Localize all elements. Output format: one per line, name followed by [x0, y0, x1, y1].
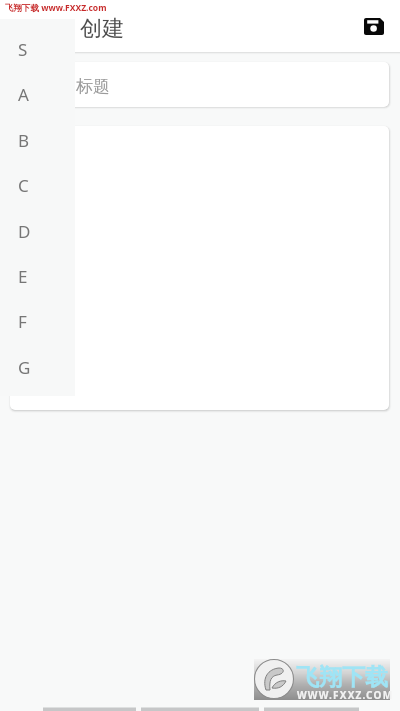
button[interactable]: S — [0, 27, 75, 72]
staticText: S — [18, 38, 28, 61]
staticText: A — [18, 83, 29, 106]
staticText: F — [18, 310, 27, 333]
button[interactable]: E — [0, 254, 75, 299]
button[interactable] — [10, 126, 389, 410]
staticText: WWW.FXXZ.COM — [297, 688, 394, 702]
staticText: D — [18, 220, 31, 243]
staticText: 创建 — [80, 15, 124, 43]
button[interactable]: C — [0, 163, 75, 208]
staticText: B — [18, 129, 30, 152]
staticText: 飞翔下载 www.FXXZ.com — [5, 2, 107, 14]
button[interactable]: Save note — [352, 4, 396, 48]
button[interactable]: G — [0, 345, 75, 390]
staticText: 标题 — [76, 76, 110, 97]
button[interactable]: A — [0, 72, 75, 117]
staticText: E — [18, 265, 28, 288]
button[interactable]: D — [0, 209, 75, 254]
button[interactable]: B — [0, 118, 75, 163]
staticText: G — [18, 356, 31, 379]
staticText: C — [18, 174, 29, 197]
button[interactable]: 标题 — [10, 62, 389, 107]
staticText: 飞翔下载 — [296, 663, 388, 692]
button[interactable]: F — [0, 299, 75, 344]
